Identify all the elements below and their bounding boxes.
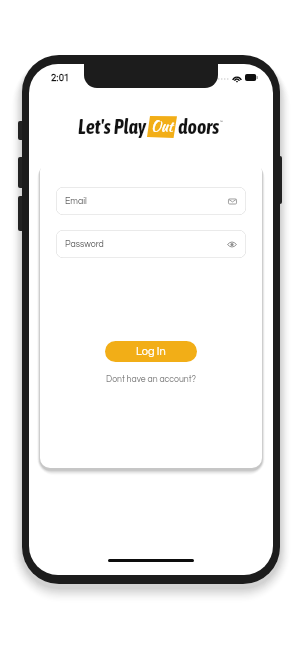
button[interactable]: Password — [56, 230, 246, 258]
staticText: Out — [151, 116, 173, 136]
staticText: doors — [178, 115, 220, 138]
staticText: Password — [65, 240, 104, 249]
other: Show password — [227, 240, 237, 249]
button[interactable]: Email — [56, 187, 246, 215]
button[interactable]: Log In — [105, 341, 197, 362]
button[interactable]: Dont have an account? — [106, 375, 196, 384]
staticText: Log In — [136, 346, 166, 357]
staticText: 2:01 — [51, 72, 70, 83]
staticText: ™ — [220, 119, 224, 125]
staticText: Email — [65, 197, 87, 206]
staticText: Let's Play — [78, 115, 146, 138]
other: Email — [228, 197, 237, 206]
